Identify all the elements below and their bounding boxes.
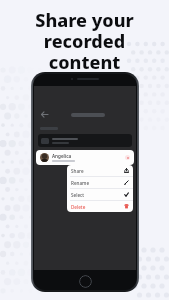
button[interactable]	[38, 134, 132, 147]
staticText: Share	[71, 168, 124, 174]
staticText: Select	[71, 192, 124, 198]
button[interactable]: Select	[67, 189, 133, 200]
button[interactable]: Delete	[67, 201, 133, 212]
button[interactable]: Share	[67, 165, 133, 176]
button[interactable]: Angelica	[36, 150, 134, 165]
button[interactable]: Rename	[67, 177, 133, 188]
button[interactable]: Back	[39, 109, 50, 120]
staticText: Share your recorded content	[10, 8, 159, 75]
staticText: Delete	[71, 204, 124, 210]
staticText: Rename	[71, 180, 124, 186]
staticText: Angelica	[52, 153, 72, 159]
